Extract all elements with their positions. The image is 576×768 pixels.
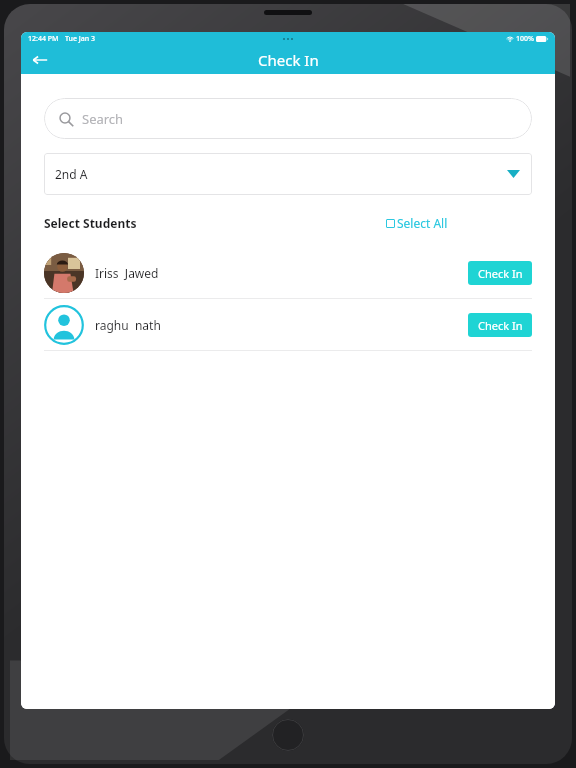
button[interactable]: 2nd A: [44, 153, 532, 195]
button[interactable]: raghu nath: [44, 299, 532, 350]
staticText: Tue Jan 3: [65, 34, 96, 44]
button[interactable]: Check In: [468, 261, 532, 285]
staticText: Select All: [397, 215, 448, 231]
staticText: 100%: [516, 34, 534, 44]
staticText: Select Students: [44, 215, 137, 231]
staticText: raghu nath: [95, 317, 161, 333]
button[interactable]: Search: [44, 98, 532, 139]
staticText: 12:44 PM: [28, 34, 59, 44]
staticText: Search: [82, 110, 124, 128]
staticText: 2nd A: [55, 166, 88, 182]
staticText: Check In: [478, 318, 523, 333]
button[interactable]: Check In: [468, 313, 532, 337]
button[interactable]: Select All: [382, 212, 452, 234]
button[interactable]: Back: [27, 47, 53, 73]
button[interactable]: Iriss Jawed: [44, 247, 532, 298]
staticText: Iriss Jawed: [95, 265, 159, 281]
staticText: Check In: [478, 266, 523, 281]
staticText: Check In: [258, 50, 319, 70]
